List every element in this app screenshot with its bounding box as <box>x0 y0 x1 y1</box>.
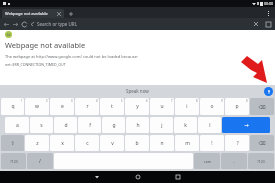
staticText: → <box>244 122 249 128</box>
button[interactable]: Recent apps <box>173 172 183 182</box>
staticText: 2 <box>46 99 48 103</box>
staticText: ⌫ <box>258 104 266 110</box>
staticText: d <box>64 122 68 129</box>
button[interactable]: h <box>126 117 149 133</box>
staticText: g <box>112 122 116 129</box>
button[interactable]: y <box>125 98 149 115</box>
staticText: ? <box>236 140 239 147</box>
button[interactable]: g <box>102 117 125 133</box>
staticText: ⌫ <box>258 140 266 146</box>
staticText: h <box>136 122 140 129</box>
staticText: s <box>40 122 43 129</box>
button[interactable]: e <box>50 98 74 115</box>
staticText: 6 <box>146 99 148 103</box>
button[interactable]: Webpage not available <box>2 9 64 18</box>
staticText: v <box>111 140 114 147</box>
staticText: The webpage at http://www.google.com/ co… <box>5 54 138 59</box>
button[interactable]: Forward <box>11 20 20 29</box>
button[interactable]: Reload <box>20 20 29 29</box>
staticText: Webpage not available <box>5 40 86 50</box>
button[interactable]: k <box>174 117 197 133</box>
staticText: Speak now <box>126 88 149 94</box>
button[interactable]: Home <box>133 172 143 182</box>
staticText: o <box>210 103 214 110</box>
staticText: c <box>86 140 89 147</box>
button[interactable]: New tab <box>64 9 78 18</box>
staticText: j <box>161 122 163 129</box>
button[interactable]: n <box>150 135 174 151</box>
button[interactable]: ⇧ <box>1 135 24 151</box>
staticText: 00:00 <box>264 1 273 6</box>
staticText: k <box>184 122 187 129</box>
button[interactable]: a <box>5 117 29 133</box>
button[interactable]: ?123 <box>248 153 274 169</box>
button[interactable]: com <box>194 153 220 169</box>
button[interactable]: p <box>225 98 249 115</box>
staticText: a <box>16 122 19 129</box>
staticText: z <box>36 140 39 147</box>
staticText: ?123 <box>257 159 265 164</box>
button[interactable]: Voice input <box>264 87 273 96</box>
staticText: ⇧ <box>10 140 15 146</box>
staticText: 5 <box>121 99 123 103</box>
button[interactable]: Close tab <box>56 11 62 17</box>
button[interactable]: w <box>25 98 49 115</box>
staticText: 7 <box>171 99 173 103</box>
button[interactable]: m <box>175 135 199 151</box>
staticText: f <box>89 122 91 129</box>
button[interactable]: i <box>175 98 199 115</box>
button[interactable]: x <box>50 135 74 151</box>
button[interactable]: t <box>100 98 124 115</box>
staticText: y <box>136 103 139 110</box>
staticText: r <box>86 103 89 110</box>
staticText: 8 <box>196 99 198 103</box>
staticText: 9 <box>221 99 223 103</box>
staticText: . <box>233 158 235 165</box>
button[interactable]: c <box>75 135 99 151</box>
button[interactable]: ⌫ <box>250 98 274 115</box>
button[interactable]: ? <box>225 135 249 151</box>
staticText: 1 <box>21 99 23 103</box>
staticText: w <box>35 103 39 110</box>
button[interactable]: j <box>150 117 173 133</box>
button[interactable]: Bookmark <box>264 20 272 28</box>
staticText: u <box>160 103 164 110</box>
button[interactable]: f <box>78 117 101 133</box>
button[interactable]: d <box>54 117 77 133</box>
button[interactable]: Stop <box>252 20 260 28</box>
staticText: t <box>111 103 113 110</box>
staticText: 3 <box>71 99 73 103</box>
button[interactable]: Back <box>2 20 11 29</box>
staticText: ?123 <box>10 159 18 164</box>
staticText: 0 <box>246 99 248 103</box>
staticText: e <box>61 103 64 110</box>
button[interactable]: z <box>25 135 49 151</box>
button[interactable]: q <box>1 98 24 115</box>
staticText: q <box>11 103 15 110</box>
button[interactable]: / <box>27 153 53 169</box>
button[interactable]: s <box>30 117 53 133</box>
staticText: x <box>61 140 64 147</box>
staticText: Search or type URL <box>37 21 78 27</box>
button[interactable]: u <box>150 98 174 115</box>
staticText: i <box>186 103 188 110</box>
button[interactable]: ?123 <box>1 153 26 169</box>
button[interactable]: ! <box>200 135 224 151</box>
staticText: / <box>39 158 41 165</box>
button[interactable]: ⌫ <box>250 135 274 151</box>
staticText: n <box>160 140 164 147</box>
staticText: 4 <box>96 99 98 103</box>
button[interactable]: r <box>75 98 99 115</box>
staticText: ! <box>211 140 213 147</box>
button[interactable]: Back <box>92 172 102 182</box>
button[interactable]: b <box>125 135 149 151</box>
button[interactable]: → <box>222 117 270 133</box>
button[interactable]: l <box>198 117 221 133</box>
staticText: l <box>209 122 211 129</box>
staticText: p <box>235 103 239 110</box>
button[interactable]: v <box>100 135 124 151</box>
button[interactable]: More options <box>264 9 272 17</box>
button[interactable]: o <box>200 98 224 115</box>
